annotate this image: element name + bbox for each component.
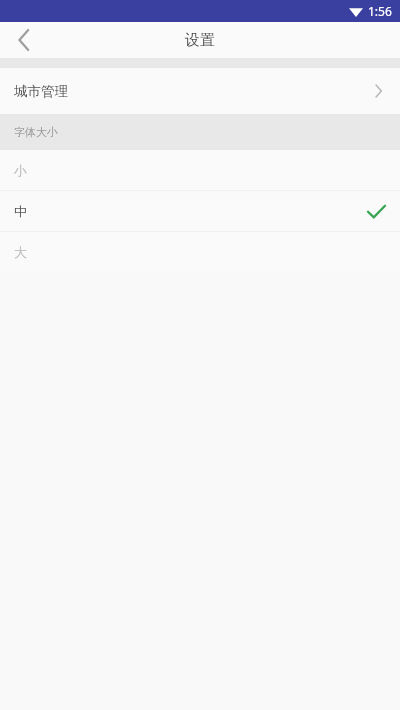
staticText: 1:56 (368, 3, 392, 19)
staticText: 中 (14, 203, 27, 219)
staticText: 大 (14, 244, 27, 260)
staticText: 字体大小 (14, 125, 58, 139)
button[interactable]: Back (0, 22, 48, 58)
button[interactable]: 中 (0, 191, 400, 231)
staticText: 小 (14, 162, 27, 178)
staticText: 设置 (185, 31, 215, 50)
staticText: 城市管理 (14, 83, 68, 100)
button[interactable]: 城市管理 (0, 68, 400, 114)
